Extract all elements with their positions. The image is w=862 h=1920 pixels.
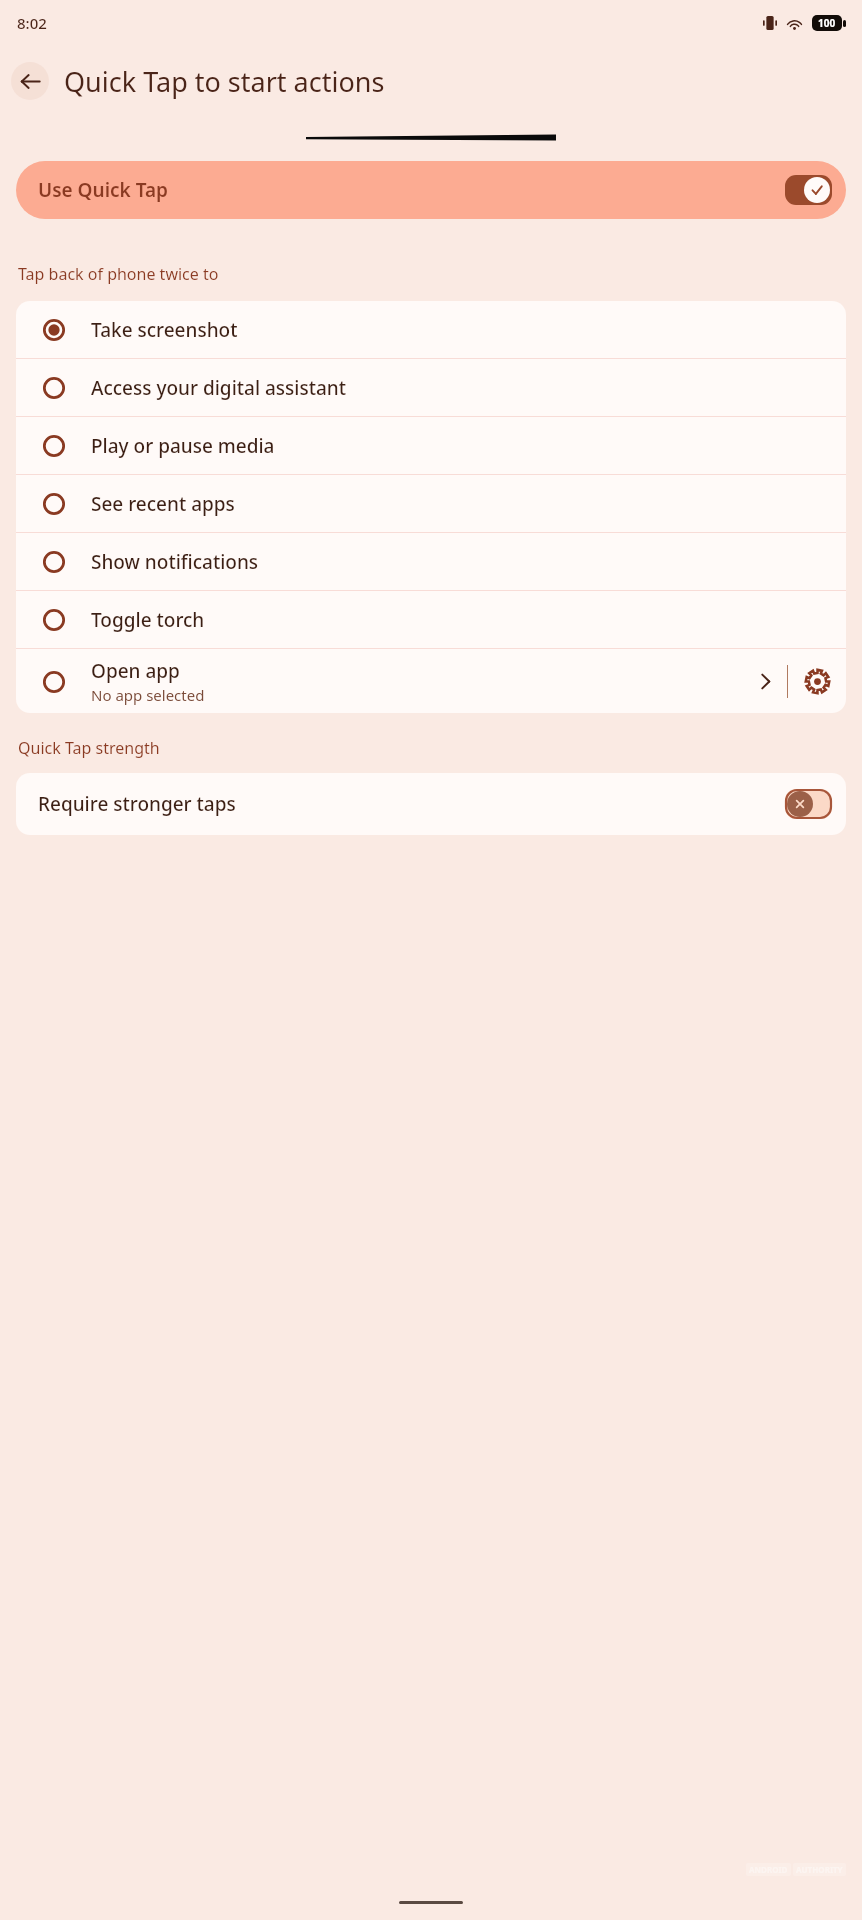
staticText: Require stronger taps [38,791,785,817]
staticText: Play or pause media [91,433,275,459]
button[interactable]: See recent apps [16,475,846,532]
button[interactable]: Use Quick Tap [16,161,846,219]
button[interactable]: Open app settings [788,652,846,710]
staticText: No app selected [91,685,205,705]
staticText: 100 [818,16,836,30]
button[interactable]: Access your digital assistant [16,359,846,416]
staticText: Use Quick Tap [38,177,785,203]
button[interactable]: Choose app [743,659,787,703]
staticText: ANDROID [749,1864,788,1875]
staticText: Quick Tap to start actions [64,63,385,100]
button[interactable]: Toggle torch [16,591,846,648]
staticText: Tap back of phone twice to [18,263,219,285]
button[interactable]: Back [11,62,49,100]
staticText: Quick Tap strength [18,737,160,759]
button[interactable]: Show notifications [16,533,846,590]
button[interactable]: Play or pause media [16,417,846,474]
button[interactable]: Take screenshot [16,301,846,358]
staticText: Take screenshot [91,317,238,343]
staticText: Access your digital assistant [91,375,347,401]
staticText: Toggle torch [91,607,205,633]
staticText: See recent apps [91,491,235,517]
staticText: Show notifications [91,549,259,575]
staticText: Open app [91,658,180,684]
staticText: AUTHORITY [796,1864,843,1875]
button[interactable]: Require stronger taps [16,773,846,835]
button[interactable]: Open app [16,658,743,705]
staticText: 8:02 [17,13,47,33]
